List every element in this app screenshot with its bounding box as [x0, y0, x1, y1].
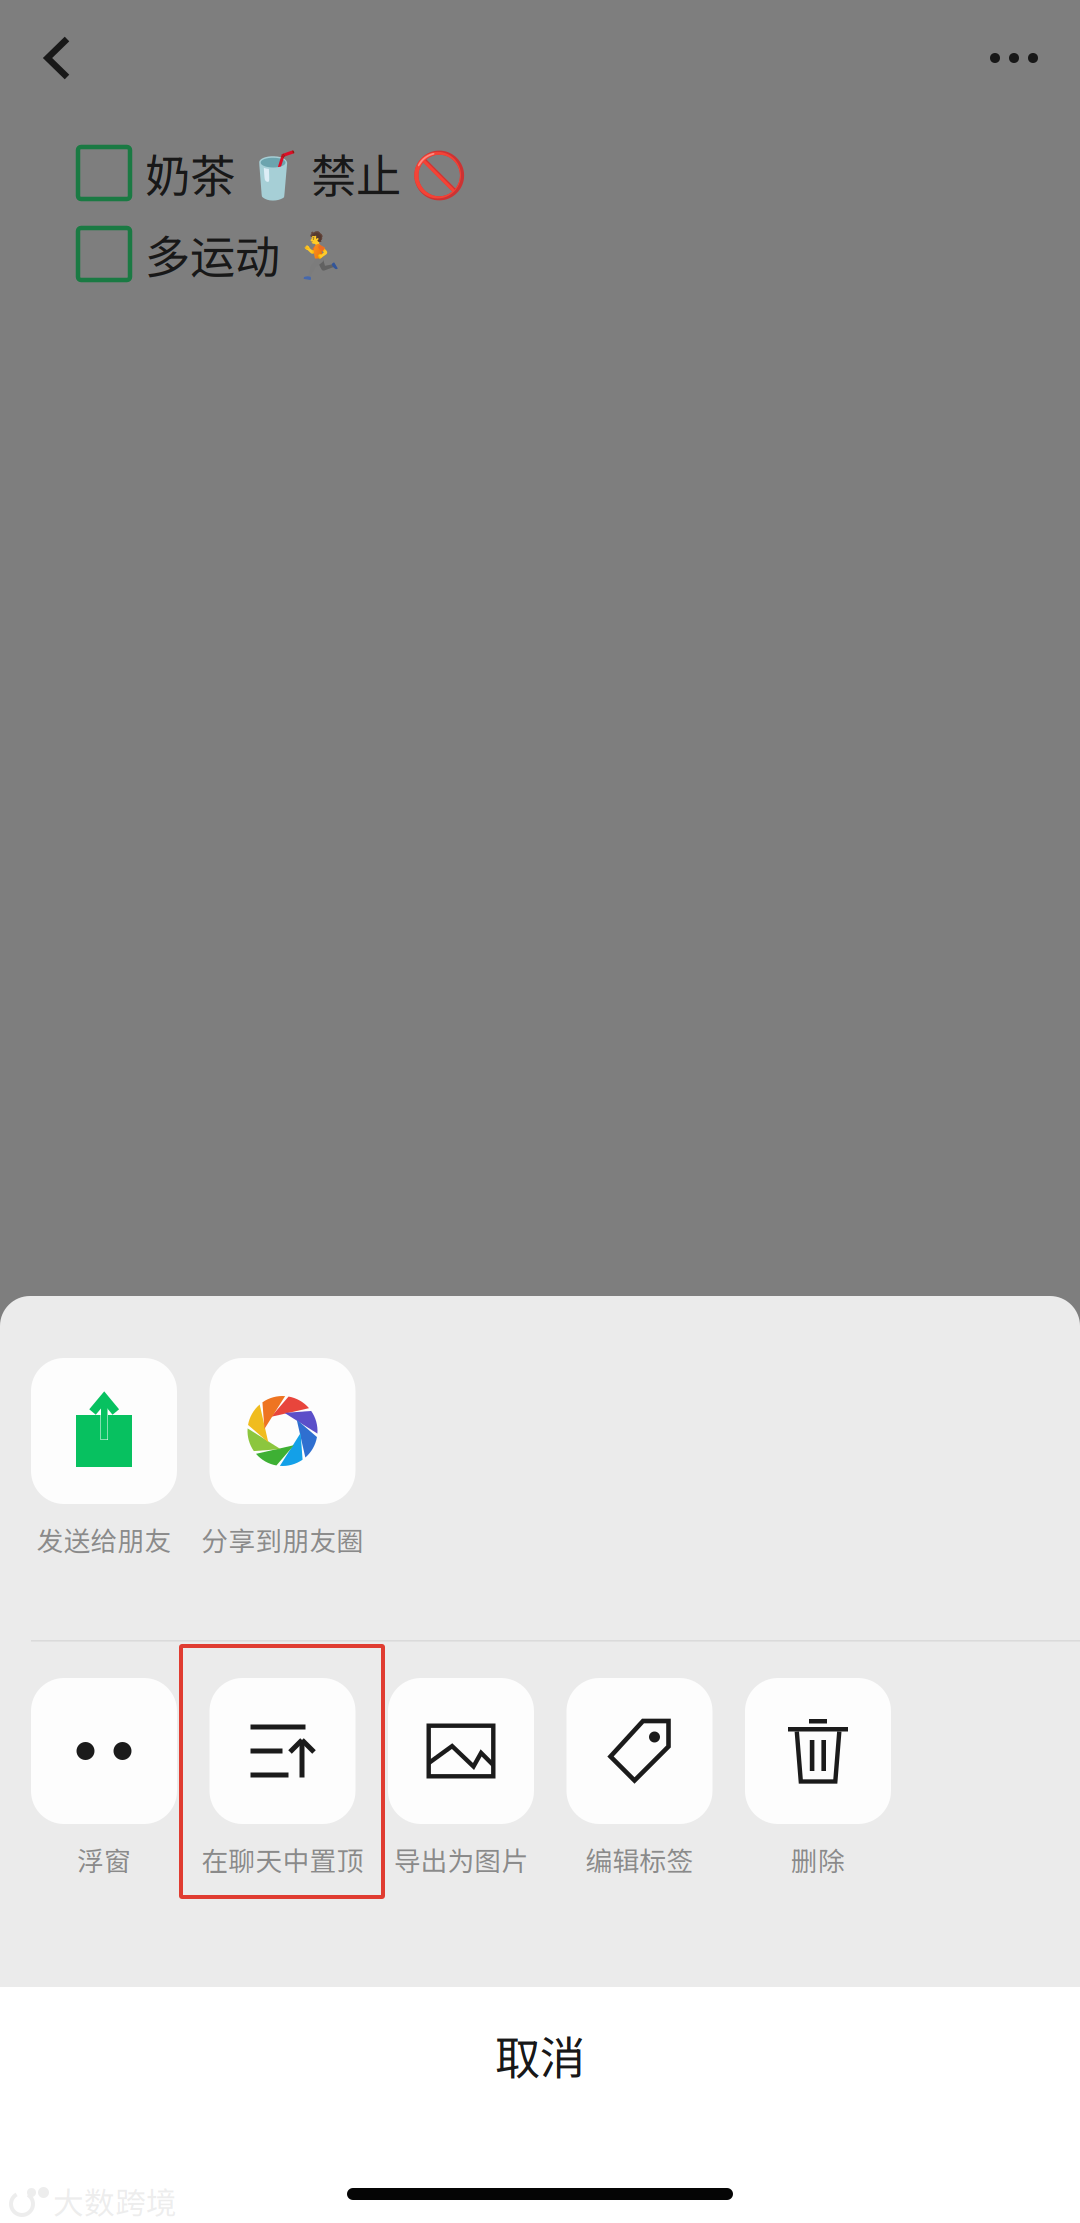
staticText: 分享到朋友圈 [201, 1520, 363, 1559]
button[interactable]: 编辑标签 [509, 1678, 769, 1894]
staticText: 多运动 🏃 [145, 221, 346, 287]
staticText: 大数跨境 [53, 2179, 177, 2223]
button[interactable]: 浮窗 [0, 1678, 234, 1894]
button[interactable]: 在聊天中置顶 [152, 1678, 412, 1894]
button[interactable]: 发送给朋友 [0, 1358, 234, 1574]
button[interactable]: 删除 [688, 1678, 948, 1894]
button[interactable]: 更多 [958, 20, 1070, 96]
staticText: 编辑标签 [585, 1840, 693, 1879]
staticText: 发送给朋友 [36, 1520, 171, 1559]
staticText: 奶茶 🥤 禁止 🚫 [145, 140, 467, 206]
button[interactable]: 分享到朋友圈 [152, 1358, 412, 1574]
staticText: 取消 [495, 2022, 585, 2088]
staticText: 在聊天中置顶 [201, 1840, 363, 1879]
staticText: 删除 [791, 1840, 845, 1879]
staticText: 浮窗 [77, 1840, 131, 1879]
button[interactable]: 导出为图片 [331, 1678, 591, 1894]
button[interactable]: 取消 [0, 1987, 1080, 2223]
button[interactable]: 返回 [30, 20, 114, 96]
staticText: 导出为图片 [393, 1840, 528, 1879]
